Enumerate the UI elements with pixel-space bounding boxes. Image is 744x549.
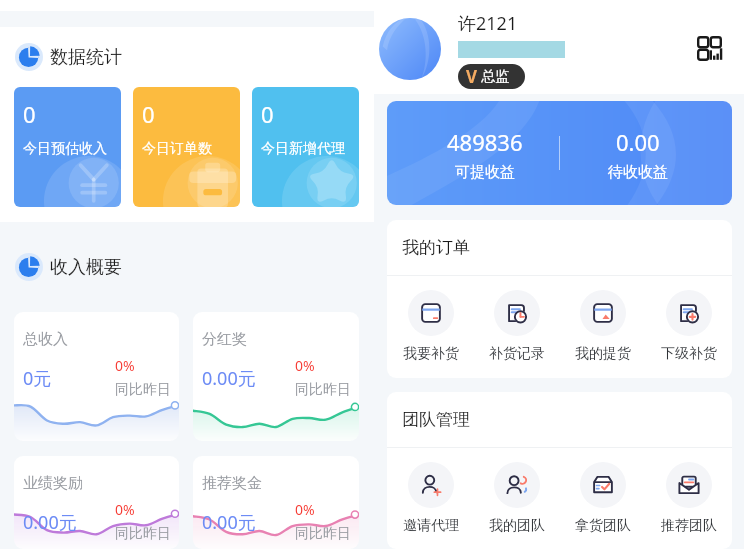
staticText: 0.00元 [202, 366, 256, 391]
button[interactable]: 我的提货 [560, 290, 646, 363]
staticText: 今日预估收入 [23, 140, 107, 158]
staticText: 0 [261, 99, 274, 129]
button[interactable]: 我的团队 [474, 462, 560, 534]
button[interactable]: 489836 [387, 101, 732, 205]
button[interactable]: 下级补货 [646, 290, 732, 363]
staticText: 我的提货 [575, 345, 631, 363]
staticText: 总收入 [23, 330, 68, 349]
button[interactable]: 0 [14, 87, 121, 207]
staticText: 同比昨日 [295, 381, 351, 399]
button[interactable]: 总收入 [14, 312, 179, 441]
staticText: 0.00元 [23, 510, 77, 535]
staticText: 拿货团队 [575, 517, 631, 534]
button[interactable]: 0 [133, 87, 240, 207]
button[interactable]: 扫一扫 [690, 29, 729, 68]
button[interactable]: 0 [252, 87, 359, 207]
staticText: 0% [295, 356, 315, 375]
button[interactable]: 推荐团队 [646, 462, 732, 534]
staticText: 业绩奖励 [23, 474, 83, 493]
staticText: 推荐团队 [661, 517, 717, 534]
button[interactable]: 补货记录 [474, 290, 560, 363]
button[interactable]: 业绩奖励 [14, 456, 179, 549]
staticText: 总监 [481, 68, 509, 86]
staticText: V [466, 65, 478, 88]
staticText: 0 [142, 99, 155, 129]
staticText: 0.00元 [202, 510, 256, 535]
staticText: 0 [23, 99, 36, 129]
staticText: 同比昨日 [295, 525, 351, 543]
staticText: 许2121 [458, 11, 518, 36]
staticText: 推荐奖金 [202, 474, 262, 493]
staticText: 下级补货 [661, 345, 717, 363]
staticText: 我的团队 [489, 517, 545, 534]
button[interactable]: 邀请代理 [387, 462, 474, 534]
staticText: 团队管理 [402, 409, 470, 430]
staticText: 可提收益 [455, 163, 515, 182]
staticText: 同比昨日 [115, 525, 171, 543]
staticText: 待收收益 [608, 163, 668, 182]
staticText: 今日新增代理 [261, 140, 345, 158]
staticText: 我的订单 [402, 237, 470, 258]
staticText: 0% [115, 500, 135, 519]
button[interactable]: 我要补货 [387, 290, 474, 363]
staticText: 489836 [447, 127, 523, 157]
staticText: 分红奖 [202, 330, 247, 349]
staticText: 我要补货 [403, 345, 459, 363]
staticText: 数据统计 [50, 46, 122, 69]
staticText: 邀请代理 [403, 517, 459, 534]
staticText: 补货记录 [489, 345, 545, 363]
staticText: 同比昨日 [115, 381, 171, 399]
staticText: 0% [115, 356, 135, 375]
staticText: 0% [295, 500, 315, 519]
staticText: 收入概要 [50, 256, 122, 279]
button[interactable]: 推荐奖金 [193, 456, 359, 549]
staticText: 0.00 [616, 127, 660, 157]
button[interactable]: 拿货团队 [560, 462, 646, 534]
staticText: 0元 [23, 366, 52, 391]
button[interactable]: 分红奖 [193, 312, 359, 441]
staticText: 今日订单数 [142, 140, 212, 158]
